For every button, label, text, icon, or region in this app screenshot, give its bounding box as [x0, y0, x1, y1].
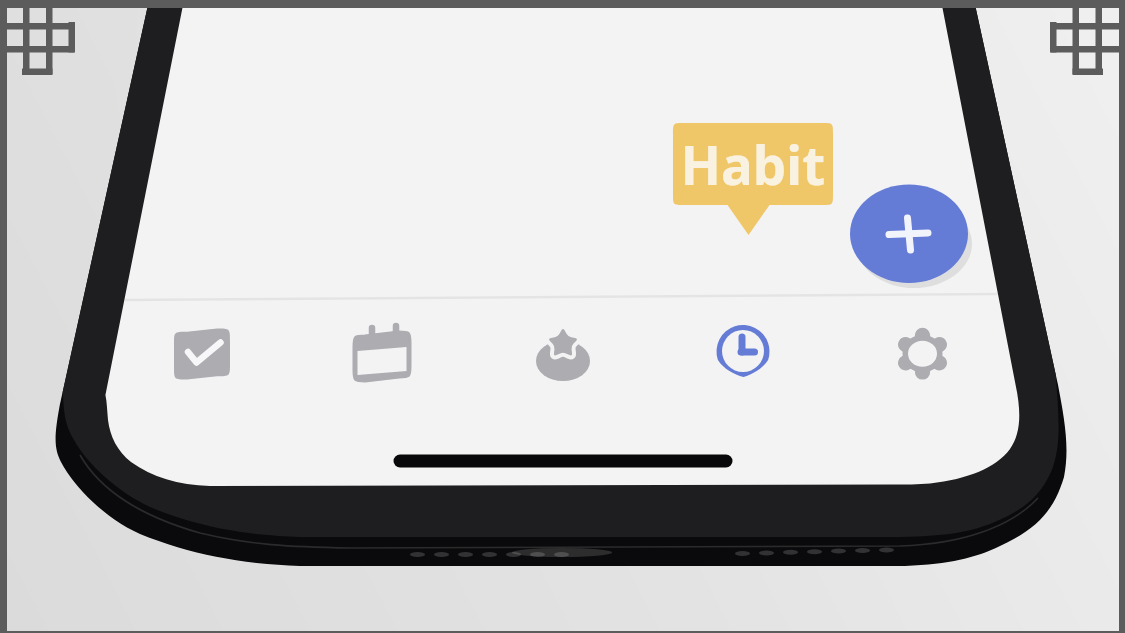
- button[interactable]: Timer: [701, 315, 785, 393]
- button[interactable]: Achievements: [521, 315, 605, 393]
- button[interactable]: Settings: [880, 315, 964, 393]
- button[interactable]: Add habit: [850, 184, 969, 283]
- button[interactable]: Habit: [673, 123, 834, 235]
- button[interactable]: Calendar: [340, 315, 424, 393]
- button[interactable]: Tasks: [160, 315, 244, 393]
